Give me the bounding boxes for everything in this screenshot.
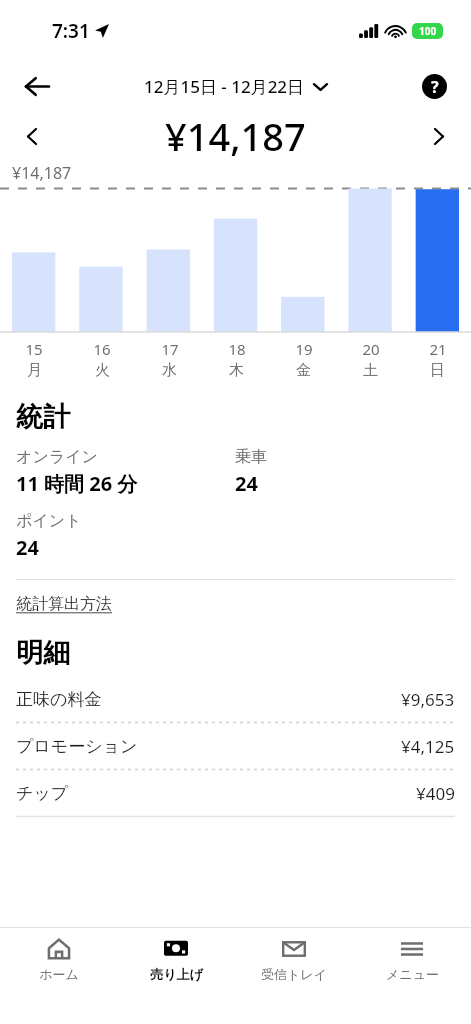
staticText: ¥409 (416, 782, 455, 805)
staticText: 16 (93, 339, 111, 359)
staticText: ¥14,187 (12, 162, 72, 184)
button[interactable]: Back (16, 65, 58, 107)
staticText: 15 (25, 339, 43, 359)
staticText: 20 (362, 339, 380, 359)
button[interactable]: メニュー (353, 928, 471, 996)
button[interactable]: 売り上げ (117, 928, 235, 996)
staticText: 11 時間 26 分 (16, 470, 138, 497)
staticText: チップ (16, 783, 69, 804)
staticText: 木 (229, 361, 244, 380)
staticText: 日 (430, 361, 445, 380)
staticText: プロモーション (16, 736, 138, 757)
staticText: 12月15日 - 12月22日 (144, 75, 305, 98)
button[interactable]: 受信トレイ (235, 928, 353, 996)
staticText: ? (431, 76, 439, 98)
staticText: 100 (419, 24, 437, 38)
staticText: メニュー (386, 966, 439, 982)
button[interactable]: 12月15日 - 12月22日 (144, 75, 327, 98)
button[interactable]: チップ (16, 770, 455, 816)
staticText: ¥9,653 (401, 688, 455, 711)
staticText: 明細 (16, 636, 70, 670)
staticText: 土 (363, 361, 378, 380)
staticText: 水 (162, 361, 177, 380)
staticText: 18 (228, 339, 246, 359)
staticText: 統計 (16, 400, 70, 434)
button[interactable]: 統計算出方法 (16, 594, 112, 614)
staticText: ¥14,187 (165, 110, 306, 162)
staticText: ホーム (39, 966, 79, 982)
button[interactable]: Previous week (12, 116, 52, 156)
button[interactable]: 正味の料金 (16, 676, 455, 722)
staticText: 17 (161, 339, 179, 359)
staticText: オンライン (16, 447, 98, 467)
staticText: 乗車 (235, 447, 267, 467)
staticText: 19 (295, 339, 313, 359)
staticText: 金 (296, 361, 311, 380)
button[interactable]: Next week (419, 116, 459, 156)
button[interactable]: ホーム (0, 928, 117, 996)
staticText: ¥4,125 (401, 735, 455, 758)
staticText: 24 (16, 534, 39, 561)
staticText: 21 (429, 339, 447, 359)
button[interactable]: プロモーション (16, 723, 455, 769)
staticText: 正味の料金 (16, 689, 102, 710)
staticText: ポイント (16, 511, 82, 531)
button[interactable]: Help (413, 65, 455, 107)
staticText: 受信トレイ (261, 966, 327, 982)
staticText: 売り上げ (150, 966, 203, 982)
staticText: 24 (235, 470, 258, 497)
staticText: 月 (27, 361, 42, 380)
staticText: 火 (95, 361, 110, 380)
staticText: 統計算出方法 (16, 594, 112, 614)
staticText: 7:31 (52, 18, 90, 44)
